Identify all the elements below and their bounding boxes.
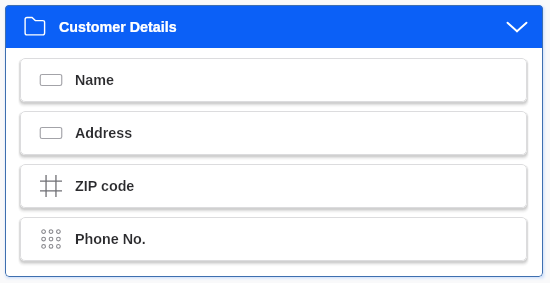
button[interactable]: Customer Details	[5, 5, 543, 48]
button[interactable]: ZIP code	[20, 164, 527, 208]
button[interactable]: Phone No.	[20, 217, 527, 261]
button[interactable]: Collapse	[497, 7, 537, 47]
staticText: Phone No.	[75, 231, 146, 247]
button[interactable]: Address	[20, 111, 527, 155]
staticText: Address	[75, 125, 133, 141]
staticText: ZIP code	[75, 178, 135, 194]
button[interactable]: Name	[20, 58, 527, 102]
staticText: Customer Details	[59, 19, 177, 35]
staticText: Name	[75, 72, 114, 88]
